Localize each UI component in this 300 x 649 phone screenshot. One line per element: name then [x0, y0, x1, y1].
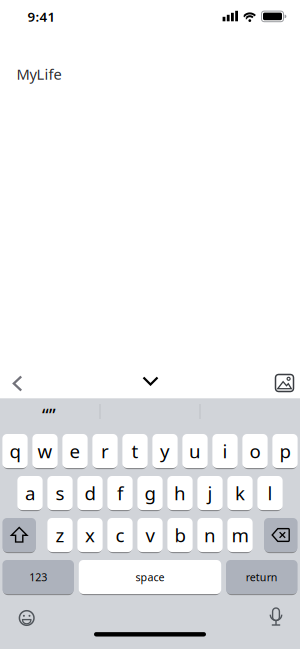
staticText: a [25, 481, 35, 505]
button[interactable]: g [137, 476, 163, 510]
staticText: q [9, 439, 20, 463]
staticText: “” [42, 403, 56, 426]
button[interactable]: w [32, 434, 58, 468]
staticText: x [85, 523, 95, 547]
button[interactable] [5, 373, 29, 393]
staticText: t [131, 439, 138, 463]
button[interactable] [2, 518, 36, 552]
staticText: l [267, 481, 272, 505]
button[interactable]: l [257, 476, 283, 510]
button[interactable]: a [17, 476, 43, 510]
staticText: 123 [29, 570, 47, 584]
staticText: e [69, 439, 80, 463]
button[interactable]: t [122, 434, 148, 468]
button[interactable]: u [182, 434, 208, 468]
button[interactable]: b [167, 518, 193, 552]
button[interactable]: m [227, 518, 253, 552]
staticText: y [160, 439, 170, 463]
staticText: k [235, 481, 245, 505]
staticText: p [279, 439, 290, 463]
staticText: n [204, 523, 216, 547]
staticText: c [115, 523, 124, 547]
staticText: f [117, 481, 123, 505]
staticText: 9:41 [27, 8, 55, 25]
staticText: h [174, 481, 186, 505]
staticText: u [189, 439, 201, 463]
button[interactable]: space [79, 560, 221, 594]
staticText: g [144, 481, 155, 505]
button[interactable]: c [107, 518, 133, 552]
staticText: b [174, 523, 185, 547]
button[interactable]: “” [0, 398, 98, 424]
button[interactable] [138, 371, 162, 391]
staticText: w [37, 439, 52, 463]
button[interactable] [264, 518, 298, 552]
button[interactable]: v [137, 518, 163, 552]
staticText: z [55, 523, 64, 547]
button[interactable]: 123 [2, 560, 74, 594]
button[interactable]: j [197, 476, 223, 510]
staticText: space [135, 570, 164, 584]
staticText: s [55, 481, 64, 505]
button[interactable]: r [92, 434, 118, 468]
button[interactable]: k [227, 476, 253, 510]
button[interactable]: f [107, 476, 133, 510]
button[interactable]: x [77, 518, 103, 552]
button[interactable] [269, 607, 283, 629]
staticText: i [222, 439, 227, 463]
staticText: return [246, 570, 278, 584]
staticText: v [145, 523, 154, 547]
staticText: o [249, 439, 260, 463]
button[interactable]: n [197, 518, 223, 552]
button[interactable]: e [62, 434, 88, 468]
staticText: d [84, 481, 95, 505]
button[interactable]: z [47, 518, 73, 552]
staticText: m [231, 523, 248, 547]
staticText: MyLife [16, 64, 61, 84]
button[interactable]: p [272, 434, 298, 468]
button[interactable] [274, 373, 294, 392]
staticText: r [101, 439, 109, 463]
button[interactable]: y [152, 434, 178, 468]
button[interactable]: h [167, 476, 193, 510]
button[interactable]: i [212, 434, 238, 468]
staticText: j [207, 481, 212, 505]
button[interactable]: q [2, 434, 28, 468]
button[interactable] [17, 608, 37, 628]
button[interactable]: s [47, 476, 73, 510]
button[interactable]: return [226, 560, 298, 594]
button[interactable]: o [242, 434, 268, 468]
button[interactable]: d [77, 476, 103, 510]
